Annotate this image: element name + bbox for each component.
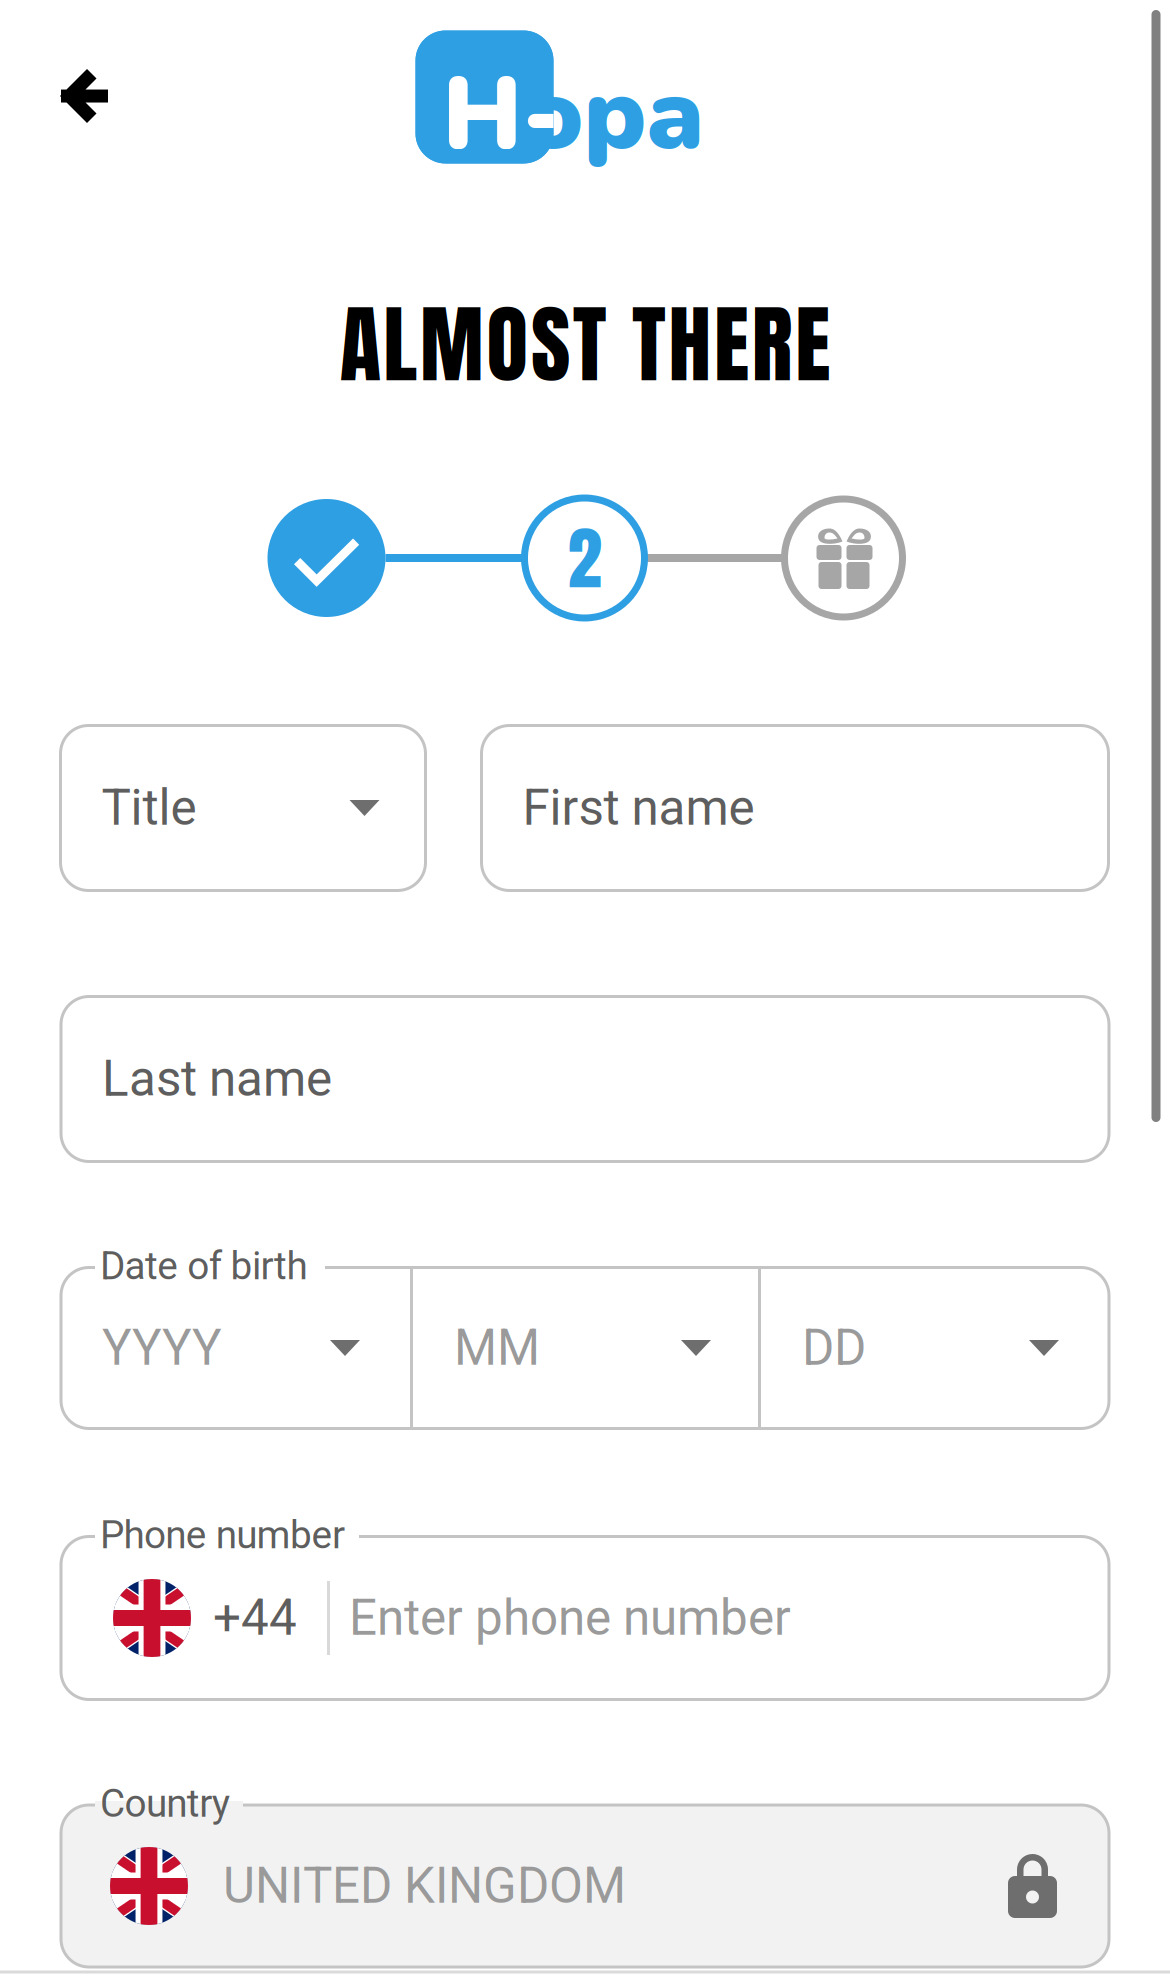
staticText: UNITED KINGDOM bbox=[223, 1857, 626, 1915]
staticText: Country bbox=[100, 1781, 230, 1826]
staticText: Hopa bbox=[442, 45, 567, 460]
staticText: MM bbox=[454, 1319, 540, 1377]
button[interactable]: Back bbox=[60, 68, 110, 124]
staticText: First name bbox=[522, 779, 754, 837]
staticText: Title bbox=[101, 779, 196, 837]
button[interactable]: DD bbox=[761, 1267, 1109, 1428]
button[interactable]: YYYY bbox=[61, 1267, 410, 1428]
button[interactable]: First name bbox=[481, 725, 1108, 890]
staticText: Last name bbox=[102, 1050, 332, 1108]
staticText: 2 bbox=[567, 506, 601, 610]
staticText: YYYY bbox=[102, 1319, 222, 1377]
staticText: Hopa bbox=[442, 45, 704, 184]
staticText: Phone number bbox=[100, 1512, 345, 1558]
staticText: ALMOST THERE bbox=[340, 280, 830, 408]
staticText: DD bbox=[802, 1319, 866, 1377]
staticText: +44 bbox=[213, 1589, 297, 1647]
button[interactable]: Last name bbox=[61, 996, 1109, 1161]
button[interactable]: MM bbox=[413, 1267, 761, 1428]
staticText: Enter phone number bbox=[349, 1589, 791, 1647]
staticText: Date of birth bbox=[100, 1243, 307, 1289]
button[interactable]: Title bbox=[60, 725, 425, 890]
